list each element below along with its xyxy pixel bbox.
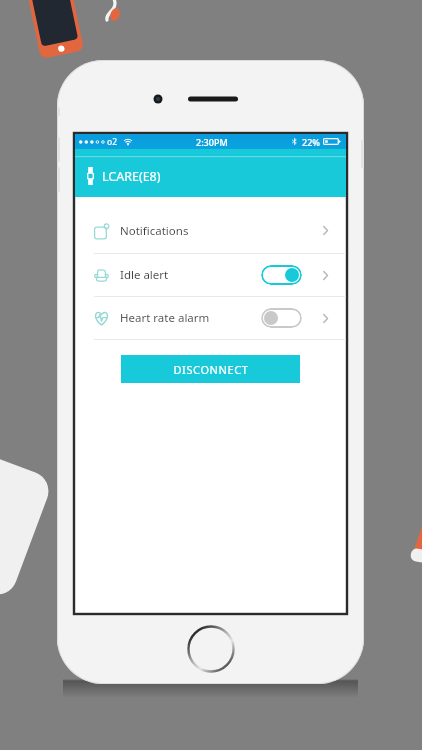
button[interactable]: Notifications (75, 208, 346, 253)
staticText: Idle alert (120, 267, 169, 283)
other: Open Heart rate alarm (323, 314, 328, 323)
button[interactable]: Toggle off (261, 308, 302, 328)
staticText: DISCONNECT (173, 362, 249, 377)
button[interactable]: Idle alert (75, 254, 346, 296)
other: Open Notifications (323, 226, 328, 235)
staticText: 22% (302, 136, 320, 148)
button[interactable]: Heart rate alarm (75, 297, 346, 339)
button[interactable]: Toggle on (261, 265, 302, 285)
button[interactable]: DISCONNECT (121, 355, 300, 383)
staticText: Notifications (120, 223, 189, 239)
staticText: Heart rate alarm (120, 310, 210, 326)
other: Open Idle alert (323, 271, 328, 280)
staticText: o2 (107, 136, 118, 148)
staticText: LCARE(E8) (102, 168, 161, 185)
staticText: 2:30PM (196, 136, 228, 148)
